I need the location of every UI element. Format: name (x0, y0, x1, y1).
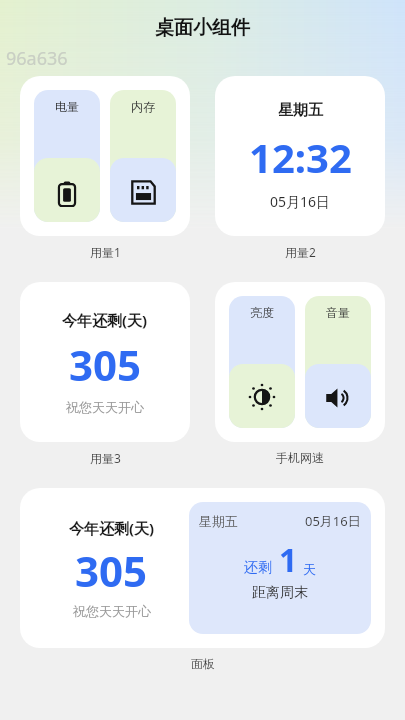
button[interactable]: 亮度 (229, 296, 295, 428)
button[interactable]: 电量 (34, 90, 100, 222)
staticText: 天 (303, 561, 316, 577)
other: Memory (130, 179, 157, 206)
staticText: 音量 (326, 305, 350, 320)
staticText: 距离周末 (252, 584, 308, 602)
button[interactable]: 星期五 (189, 502, 371, 634)
other: Volume (324, 384, 352, 412)
staticText: 05月16日 (305, 512, 361, 530)
staticText: 内存 (131, 99, 155, 114)
staticText: 电量 (55, 99, 79, 114)
staticText: 还剩 (244, 559, 272, 577)
staticText: 1 (279, 538, 298, 582)
staticText: 桌面小组件 (155, 16, 250, 40)
button[interactable]: 电量 (20, 76, 190, 236)
staticText: 用量2 (285, 244, 316, 260)
button[interactable]: 星期五 (215, 76, 385, 236)
button[interactable]: 今年还剩(天) (20, 488, 385, 648)
staticText: 星期五 (278, 101, 323, 120)
staticText: 用量1 (90, 244, 121, 260)
staticText: 面板 (191, 656, 215, 671)
staticText: 12:32 (249, 130, 352, 184)
button[interactable]: 亮度 (215, 282, 385, 442)
staticText: 305 (69, 336, 142, 393)
button[interactable]: 内存 (110, 90, 176, 222)
staticText: 祝您天天开心 (73, 603, 151, 619)
staticText: 亮度 (250, 305, 274, 320)
staticText: 今年还剩(天) (69, 518, 155, 538)
button[interactable]: 今年还剩(天) (20, 282, 190, 442)
other: Battery (54, 180, 80, 206)
staticText: 星期五 (199, 513, 238, 529)
staticText: 今年还剩(天) (62, 310, 148, 330)
staticText: 05月16日 (270, 192, 331, 211)
other: Brightness (247, 382, 277, 412)
staticText: 手机网速 (276, 450, 324, 465)
button[interactable]: 音量 (305, 296, 371, 428)
staticText: 祝您天天开心 (66, 399, 144, 415)
staticText: 305 (75, 542, 148, 599)
staticText: 96a636 (6, 46, 68, 71)
staticText: 用量3 (90, 450, 121, 466)
